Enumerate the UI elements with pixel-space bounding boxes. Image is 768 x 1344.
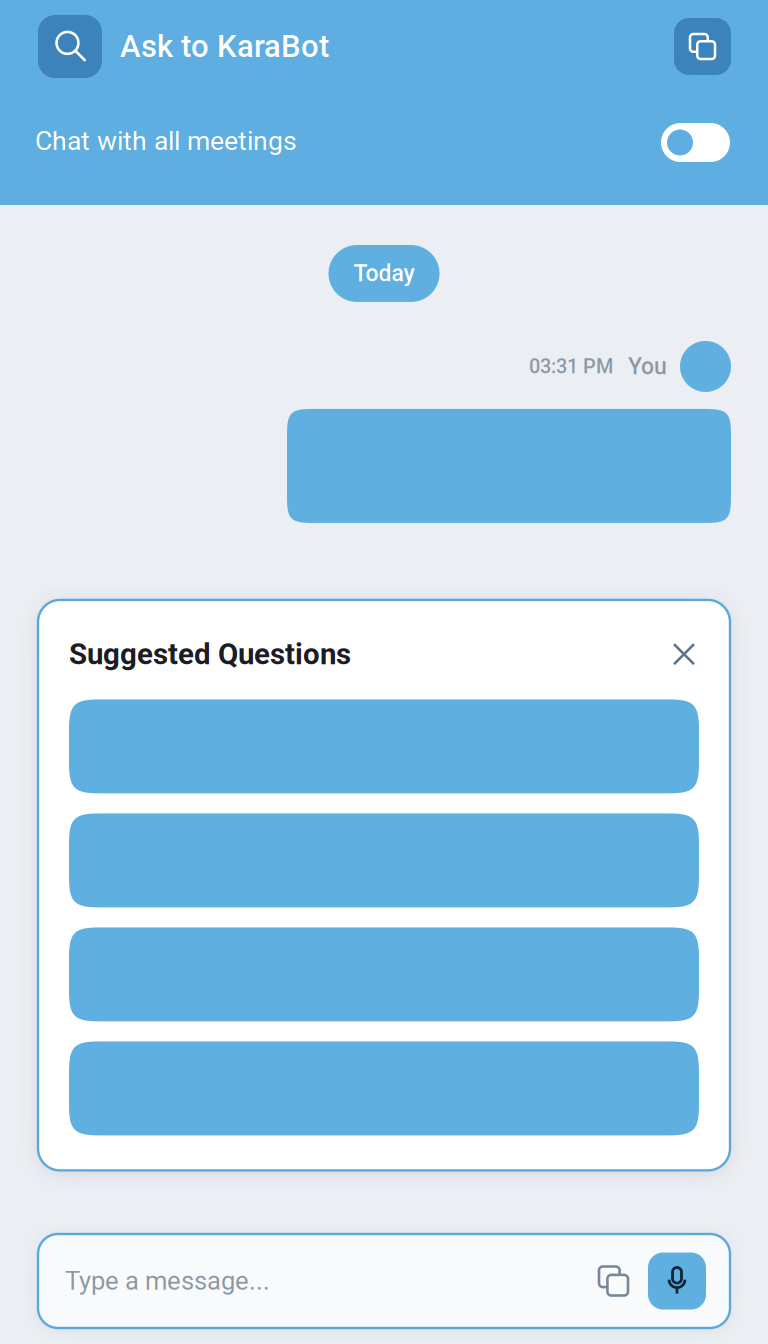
staticText: Suggested Questions [69, 637, 351, 671]
button[interactable]: Voice input [648, 1252, 706, 1309]
button[interactable]: New chat [674, 18, 731, 75]
staticText: You [628, 353, 667, 380]
staticText: Chat with all meetings [35, 125, 297, 157]
staticText: Ask to KaraBot [120, 28, 329, 65]
button[interactable]: Copy [590, 1258, 636, 1304]
button[interactable]: Chat with all meetings [661, 120, 730, 162]
staticText: 03:31 PM [529, 355, 613, 378]
staticText: Today [353, 260, 414, 287]
button[interactable]: Dismiss suggested questions [667, 637, 701, 671]
button[interactable]: Suggested question 4 [69, 1041, 699, 1135]
button[interactable]: Search [38, 15, 102, 78]
button[interactable]: Suggested question 3 [69, 927, 699, 1021]
staticText: Type a message... [65, 1266, 270, 1296]
button[interactable]: Suggested question 2 [69, 813, 699, 907]
button[interactable]: Suggested question 1 [69, 699, 699, 793]
